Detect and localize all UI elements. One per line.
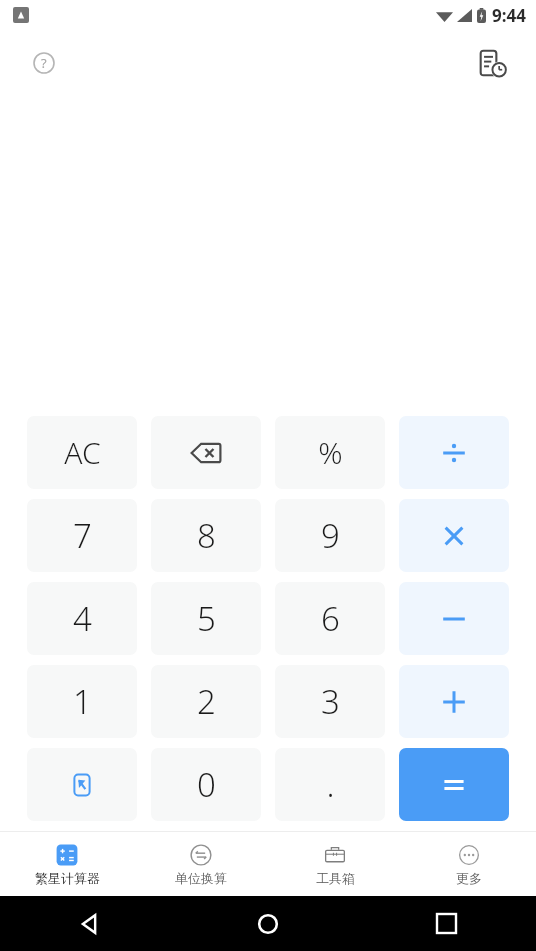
staticText: 9 bbox=[321, 513, 340, 558]
button[interactable]: 6 bbox=[275, 582, 385, 655]
staticText: 2 bbox=[197, 679, 216, 724]
staticText: 工具箱 bbox=[316, 870, 355, 886]
button[interactable]: 3 bbox=[275, 665, 385, 738]
button[interactable]: Help bbox=[26, 45, 62, 81]
button[interactable]: 0 bbox=[151, 748, 261, 821]
staticText: 4 bbox=[73, 596, 92, 641]
staticText: 0 bbox=[197, 762, 216, 807]
staticText: AC bbox=[64, 432, 101, 473]
button[interactable]: 单位换算 bbox=[134, 832, 268, 896]
button[interactable]: 工具箱 bbox=[268, 832, 402, 896]
button[interactable]: 1 bbox=[27, 665, 137, 738]
staticText: 单位换算 bbox=[175, 870, 227, 886]
staticText: 5 bbox=[197, 596, 216, 641]
button[interactable]: Expand bbox=[27, 748, 137, 821]
button[interactable]: . bbox=[275, 748, 385, 821]
button[interactable]: 2 bbox=[151, 665, 261, 738]
staticText: % bbox=[318, 432, 343, 473]
button[interactable]: 9 bbox=[275, 499, 385, 572]
staticText: . bbox=[326, 762, 335, 807]
staticText: 9:44 bbox=[492, 4, 526, 27]
staticText: 6 bbox=[321, 596, 340, 641]
button[interactable]: AC bbox=[27, 416, 137, 489]
button[interactable]: 4 bbox=[27, 582, 137, 655]
staticText: ? bbox=[41, 54, 47, 72]
button[interactable]: 8 bbox=[151, 499, 261, 572]
button[interactable]: 更多 bbox=[402, 832, 536, 896]
button[interactable]: Divide bbox=[399, 416, 509, 489]
button[interactable]: Minus bbox=[399, 582, 509, 655]
staticText: 8 bbox=[197, 513, 216, 558]
button[interactable]: % bbox=[275, 416, 385, 489]
button[interactable]: Equals bbox=[399, 748, 509, 821]
staticText: 3 bbox=[321, 679, 340, 724]
staticText: 更多 bbox=[456, 870, 482, 886]
button[interactable]: 7 bbox=[27, 499, 137, 572]
button[interactable]: Backspace bbox=[151, 416, 261, 489]
button[interactable]: Plus bbox=[399, 665, 509, 738]
staticText: 7 bbox=[73, 513, 92, 558]
button[interactable]: Multiply bbox=[399, 499, 509, 572]
button[interactable]: 繁星计算器 bbox=[0, 832, 134, 896]
button[interactable]: 5 bbox=[151, 582, 261, 655]
button[interactable]: History bbox=[472, 42, 514, 84]
staticText: 繁星计算器 bbox=[35, 870, 100, 886]
staticText: 1 bbox=[73, 679, 92, 724]
